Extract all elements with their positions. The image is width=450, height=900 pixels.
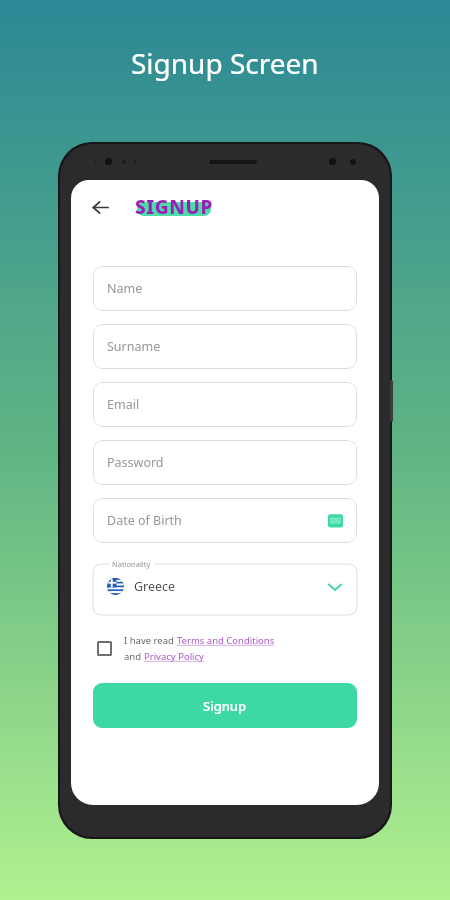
staticText: and [124,650,144,663]
button[interactable]: Email [93,382,357,427]
button[interactable]: Name [93,266,357,311]
button[interactable]: Greece [93,564,357,609]
staticText: Greece [134,578,327,595]
button[interactable]: Date of Birth [93,498,357,543]
button[interactable]: Back [83,190,117,224]
button[interactable]: Signup [93,683,357,728]
staticText: Date of Birth [107,512,328,529]
staticText: SIGNUP [135,194,213,220]
button[interactable]: Accept terms checkbox [93,634,357,663]
staticText: I have read [124,634,177,647]
button[interactable]: Terms and Conditions [177,634,275,647]
staticText: Name [107,280,343,297]
button[interactable]: Password [93,440,357,485]
button[interactable]: Surname [93,324,357,369]
other: Accept terms checkbox [97,641,112,656]
staticText: Password [107,454,343,471]
button[interactable]: Privacy Policy [144,650,204,663]
staticText: Signup Screen [131,44,319,82]
staticText: Surname [107,338,343,355]
staticText: Nationality [112,559,151,569]
staticText: Signup [203,697,247,715]
staticText: Email [107,396,343,413]
